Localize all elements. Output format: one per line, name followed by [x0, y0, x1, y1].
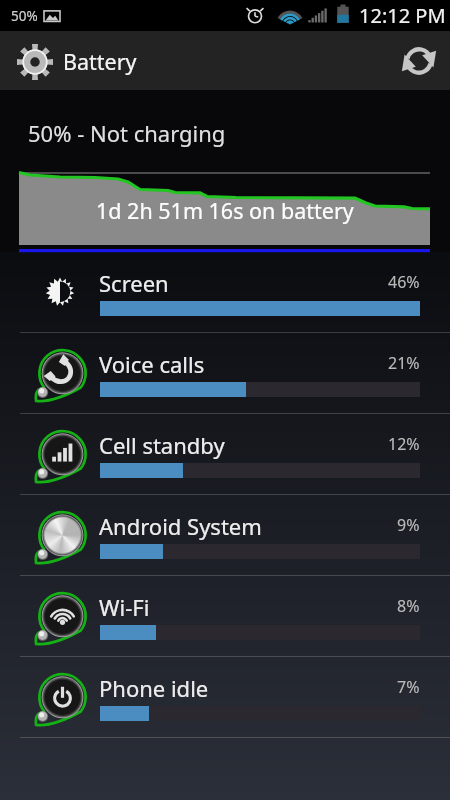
staticText: Wi-Fi: [99, 592, 150, 622]
button[interactable]: Cell standby: [0, 414, 450, 494]
staticText: 46%: [388, 271, 420, 293]
staticText: 50%: [11, 7, 38, 25]
staticText: Cell standby: [99, 430, 225, 460]
staticText: 21%: [388, 352, 420, 374]
staticText: Android System: [99, 511, 262, 541]
staticText: 1d 2h 51m 16s on battery: [96, 196, 354, 225]
staticText: Screen: [99, 268, 169, 298]
button[interactable]: Battery: [0, 31, 149, 90]
staticText: 9%: [397, 514, 420, 536]
staticText: 8%: [397, 595, 420, 617]
staticText: Battery: [63, 47, 137, 76]
staticText: 50% - Not charging: [28, 118, 226, 148]
button[interactable]: Android System: [0, 495, 450, 575]
staticText: Voice calls: [99, 349, 205, 379]
button[interactable]: Refresh: [388, 31, 450, 90]
staticText: 12%: [388, 433, 420, 455]
button[interactable]: Phone idle: [0, 657, 450, 737]
staticText: 7%: [397, 676, 420, 698]
staticText: Phone idle: [99, 673, 209, 703]
staticText: 12:12 PM: [359, 2, 446, 29]
button[interactable]: Voice calls: [0, 333, 450, 413]
button[interactable]: Screen: [0, 252, 450, 332]
button[interactable]: Wi-Fi: [0, 576, 450, 656]
